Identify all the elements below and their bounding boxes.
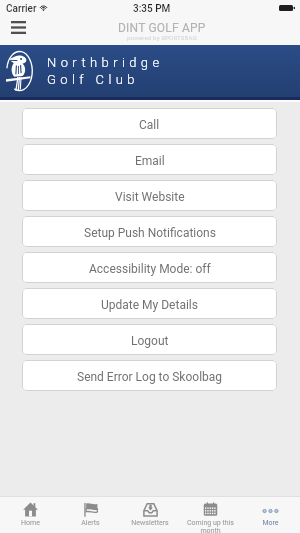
button[interactable]: Newsletters <box>120 497 180 533</box>
staticText: Home <box>21 519 40 527</box>
staticText: 3:35 PM <box>133 3 171 15</box>
staticText: More <box>262 519 279 527</box>
staticText: Northbridge <box>47 55 164 70</box>
button[interactable]: Visit Website <box>22 180 277 211</box>
button[interactable]: Call <box>22 108 277 139</box>
staticText: Golf Club <box>47 72 139 87</box>
button[interactable]: Menu <box>0 14 36 45</box>
staticText: Logout <box>131 334 169 348</box>
staticText: DINT GOLF APP <box>118 21 206 35</box>
button[interactable]: Email <box>22 144 277 175</box>
staticText: Accessibility Mode: off <box>89 262 211 276</box>
staticText: Newsletters <box>131 519 169 527</box>
button[interactable]: Logout <box>22 324 277 355</box>
staticText: Email <box>135 154 165 168</box>
staticText: Visit Website <box>115 190 185 204</box>
staticText: Carrier <box>6 3 37 15</box>
button[interactable]: Home <box>0 497 60 533</box>
button[interactable]: Send Error Log to Skoolbag <box>22 360 277 391</box>
button[interactable]: Setup Push Notifications <box>22 216 277 247</box>
staticText: Coming up this month <box>187 519 234 533</box>
button[interactable]: Update My Details <box>22 288 277 319</box>
button[interactable]: More <box>240 497 300 533</box>
button[interactable]: Alerts <box>60 497 120 533</box>
staticText: powered by SPORTSBAG <box>127 34 197 41</box>
staticText: Update My Details <box>101 298 198 312</box>
button[interactable]: Accessibility Mode: off <box>22 252 277 283</box>
staticText: Alerts <box>81 519 100 527</box>
button[interactable]: Coming up this month <box>180 497 240 533</box>
staticText: Setup Push Notifications <box>84 226 216 240</box>
staticText: Call <box>139 118 160 132</box>
staticText: Send Error Log to Skoolbag <box>77 370 223 384</box>
